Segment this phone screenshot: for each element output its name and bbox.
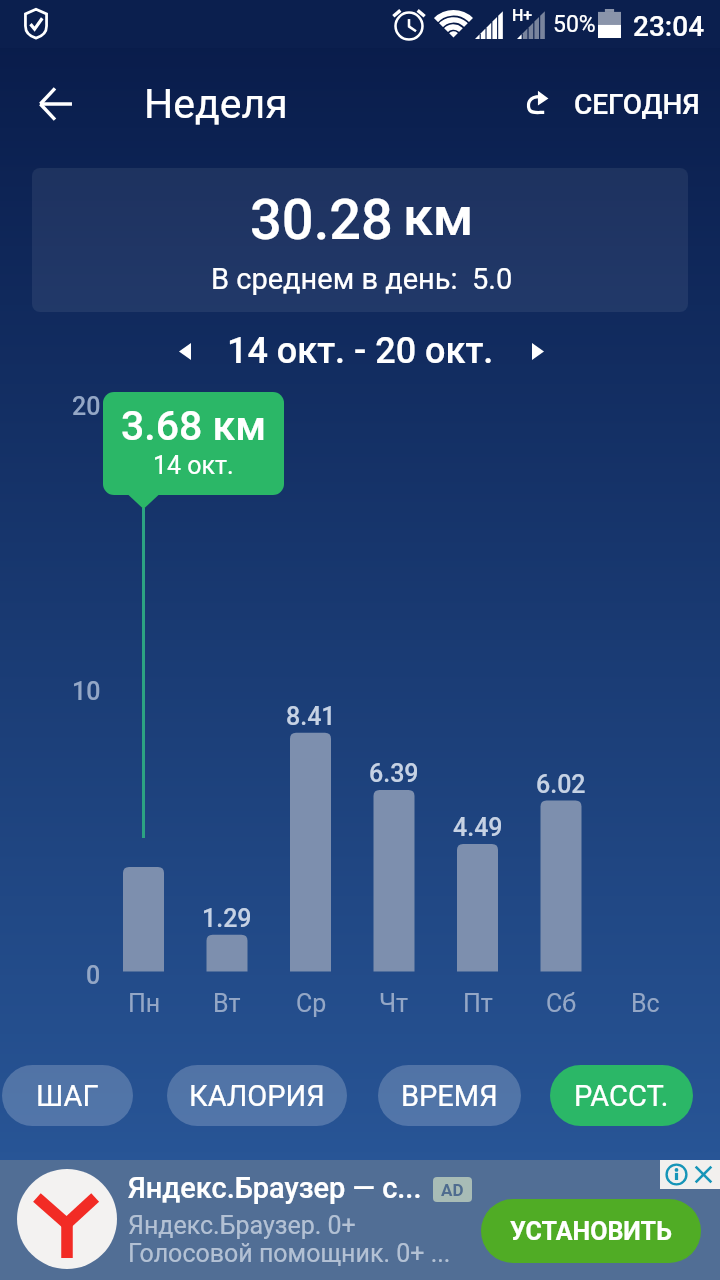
- staticText: ВРЕМЯ: [401, 1079, 498, 1113]
- staticText: 3.68 км: [121, 402, 266, 450]
- staticText: AD: [441, 1180, 464, 1200]
- staticText: Вс: [631, 989, 660, 1018]
- staticText: 8.41: [286, 702, 336, 731]
- staticText: км: [403, 185, 474, 248]
- staticText: Пт: [463, 989, 493, 1018]
- button[interactable]: РАССТ.: [550, 1065, 693, 1126]
- button[interactable]: КАЛОРИЯ: [167, 1065, 347, 1126]
- staticText: 0: [86, 961, 101, 990]
- staticText: Ср: [296, 989, 327, 1018]
- staticText: 6.39: [369, 759, 419, 788]
- staticText: В среднем в день: 5.0: [211, 262, 513, 296]
- button[interactable]: Back: [22, 70, 90, 138]
- staticText: H+: [512, 6, 533, 25]
- staticText: 10: [72, 677, 101, 706]
- staticText: 14 окт. - 20 окт.: [227, 330, 494, 372]
- staticText: 6.02: [536, 770, 586, 799]
- staticText: 4.49: [453, 813, 503, 842]
- staticText: 23:04: [633, 10, 705, 43]
- button[interactable]: Next week: [509, 323, 565, 379]
- staticText: 14 окт.: [153, 451, 234, 480]
- staticText: РАССТ.: [574, 1079, 669, 1113]
- staticText: ШАГ: [36, 1079, 99, 1113]
- staticText: Вт: [213, 989, 241, 1018]
- staticText: Пн: [128, 989, 161, 1018]
- staticText: 1.29: [202, 904, 252, 933]
- button[interactable]: Close ad: [692, 1163, 715, 1186]
- staticText: Голосовой помощник. 0+ ...: [128, 1239, 451, 1268]
- staticText: 20: [72, 392, 101, 421]
- staticText: СЕГОДНЯ: [574, 88, 700, 121]
- button[interactable]: Redo: [527, 72, 700, 136]
- other: Redo: [527, 95, 548, 114]
- button[interactable]: Previous week: [157, 323, 213, 379]
- staticText: Неделя: [144, 80, 288, 128]
- staticText: Яндекс.Браузер. 0+: [128, 1211, 356, 1240]
- button[interactable]: 30.28: [32, 168, 688, 312]
- staticText: Чт: [379, 989, 409, 1018]
- button[interactable]: 3.68 км: [103, 392, 284, 495]
- button[interactable]: Ad info: [665, 1163, 688, 1186]
- button[interactable]: ВРЕМЯ: [378, 1065, 521, 1126]
- staticText: КАЛОРИЯ: [189, 1079, 325, 1113]
- staticText: Яндекс.Браузер — с...: [128, 1171, 422, 1205]
- staticText: Сб: [546, 989, 577, 1018]
- staticText: 30.28: [250, 187, 393, 253]
- button[interactable]: УСТАНОВИТЬ: [481, 1199, 701, 1263]
- staticText: 50%: [553, 11, 596, 38]
- staticText: УСТАНОВИТЬ: [510, 1217, 672, 1246]
- button[interactable]: ШАГ: [2, 1065, 133, 1126]
